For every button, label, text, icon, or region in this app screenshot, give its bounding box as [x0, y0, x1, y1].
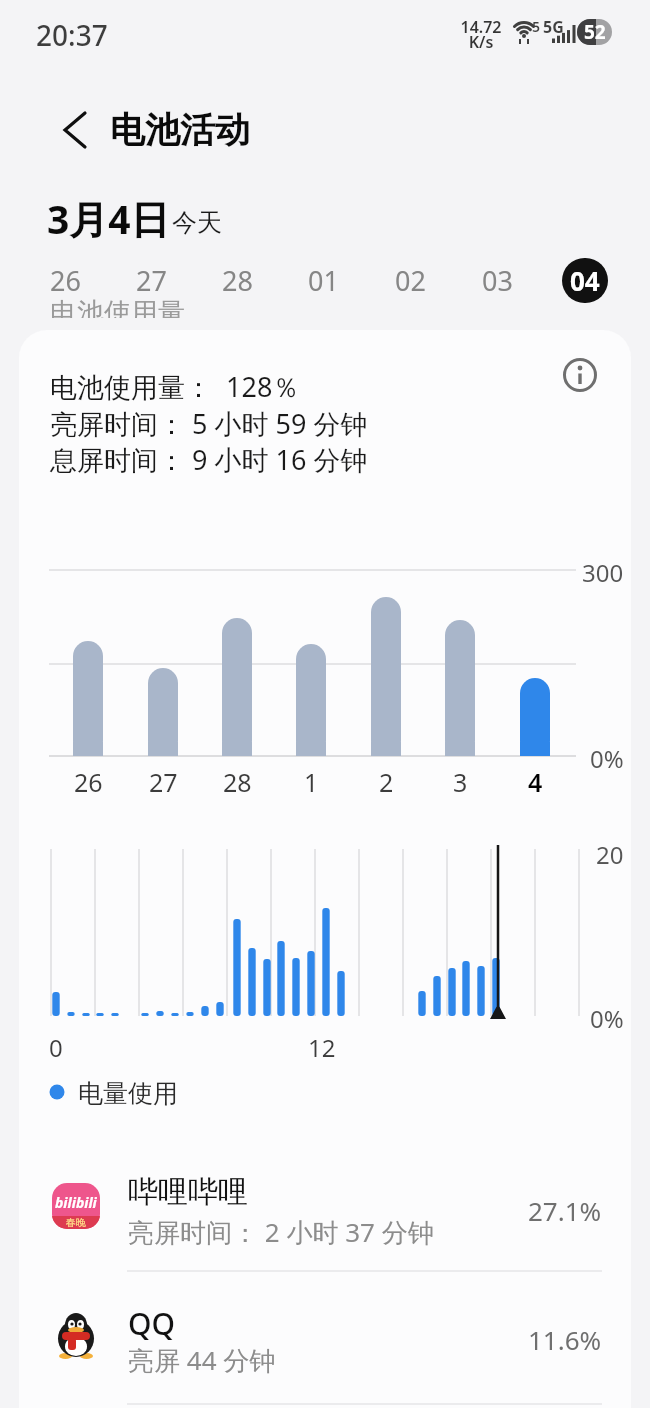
staticText: 28	[223, 765, 252, 799]
staticText: 0	[49, 1031, 63, 1064]
staticText: 5	[532, 17, 541, 36]
staticText: 26	[74, 765, 103, 799]
staticText: 300	[582, 556, 624, 589]
button[interactable]: 27	[108, 258, 194, 303]
staticText: 亮屏时间： 2 小时 37 分钟	[128, 1214, 434, 1250]
staticText: 电池活动	[110, 108, 250, 152]
staticText: 20:37	[36, 16, 108, 54]
staticText: 27	[136, 262, 167, 299]
staticText: 3	[453, 765, 468, 799]
staticText: 20	[596, 838, 624, 871]
button[interactable]: 04	[562, 258, 608, 303]
staticText: 01	[308, 262, 339, 299]
staticText: 电量使用	[78, 1078, 178, 1109]
staticText: 03	[482, 262, 513, 299]
button[interactable]: 01	[280, 258, 367, 303]
button[interactable]: 28	[194, 258, 280, 303]
button[interactable]	[562, 357, 598, 393]
staticText: 52	[584, 19, 606, 45]
staticText: QQ	[128, 1303, 176, 1344]
button[interactable]	[33, 1295, 617, 1401]
staticText: 12	[308, 1031, 336, 1064]
staticText: 26	[50, 262, 81, 299]
staticText: 27.1%	[528, 1193, 602, 1228]
staticText: 04	[570, 263, 600, 298]
staticText: 今天	[172, 207, 222, 238]
staticText: 4	[528, 765, 543, 799]
staticText: 3月4日	[47, 192, 170, 245]
staticText: 息屏时间： 9 小时 16 分钟	[50, 441, 368, 478]
staticText: 亮屏时间： 5 小时 59 分钟	[50, 405, 368, 442]
button[interactable]: 26	[22, 258, 108, 303]
staticText: 27	[149, 765, 178, 799]
staticText: 0%	[590, 1002, 624, 1035]
button[interactable]: 03	[454, 258, 541, 303]
staticText: 电池使用量： 128％	[50, 368, 300, 405]
button[interactable]	[33, 1165, 617, 1271]
staticText: 5G	[543, 16, 564, 38]
staticText: 1	[304, 765, 319, 799]
button[interactable]	[40, 100, 100, 160]
staticText: 02	[395, 262, 426, 299]
staticText: bilibili	[55, 1193, 97, 1212]
staticText: 28	[222, 262, 253, 299]
staticText: 哔哩哔哩	[128, 1173, 248, 1211]
button[interactable]: 02	[367, 258, 454, 303]
staticText: 春晚	[66, 1216, 86, 1229]
staticText: 2	[379, 765, 394, 799]
staticText: 11.6%	[528, 1322, 602, 1357]
staticText: 0%	[590, 742, 624, 775]
staticText: 亮屏 44 分钟	[128, 1342, 276, 1378]
staticText: 电池使用量	[50, 296, 185, 330]
staticText: 14.72 K/s	[460, 16, 502, 52]
